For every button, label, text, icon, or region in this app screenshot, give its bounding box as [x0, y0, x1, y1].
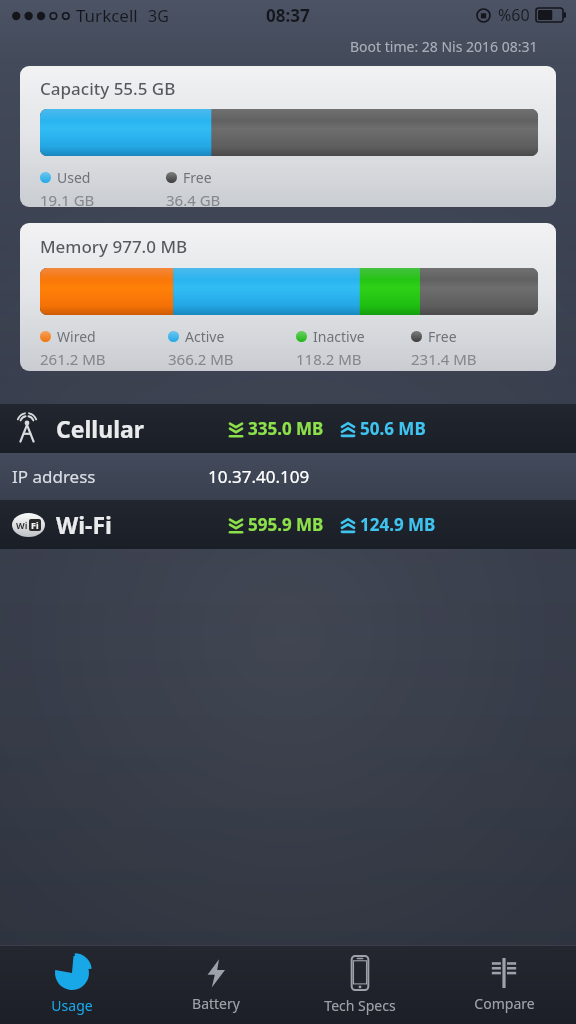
staticText: Free	[183, 168, 212, 187]
staticText: 118.2 MB	[296, 349, 362, 369]
button[interactable]: Wi-Fi	[0, 500, 576, 549]
staticText: 595.9 MB	[248, 513, 324, 536]
staticText: 10.37.40.109	[208, 465, 310, 488]
staticText: Capacity 55.5 GB	[40, 77, 176, 100]
other: Cellular	[12, 414, 42, 444]
button[interactable]: Usage	[0, 946, 144, 1024]
staticText: Turkcell	[76, 4, 138, 27]
staticText: 08:37	[266, 4, 310, 27]
staticText: Boot time: 28 Nis 2016 08:31	[350, 37, 538, 56]
button[interactable]: IP address	[0, 453, 576, 500]
staticText: Active	[185, 327, 225, 346]
staticText: Cellular	[56, 413, 145, 444]
staticText: Fi	[31, 519, 39, 531]
other: Battery	[201, 958, 231, 988]
staticText: Wi	[16, 519, 28, 531]
staticText: 50.6 MB	[360, 417, 426, 440]
staticText: Tech Specs	[324, 996, 396, 1015]
staticText: Usage	[51, 996, 93, 1015]
staticText: Battery	[192, 994, 240, 1013]
staticText: 36.4 GB	[166, 190, 221, 207]
other: Wi-Fi	[12, 513, 45, 537]
staticText: Free	[428, 327, 457, 346]
staticText: Used	[57, 168, 91, 187]
staticText: Wired	[57, 327, 96, 346]
other: Usage	[55, 956, 89, 990]
staticText: 231.4 MB	[411, 349, 477, 369]
staticText: 335.0 MB	[248, 417, 324, 440]
other: Compare	[488, 958, 520, 988]
staticText: Compare	[474, 994, 535, 1013]
staticText: %60	[498, 4, 530, 26]
staticText: 261.2 MB	[40, 349, 106, 369]
staticText: 3G	[148, 5, 169, 27]
staticText: Wi-Fi	[56, 509, 112, 540]
button[interactable]: Battery	[144, 946, 288, 1024]
other: Tech Specs	[347, 956, 373, 990]
button[interactable]: Tech Specs	[288, 946, 432, 1024]
button[interactable]: Compare	[432, 946, 576, 1024]
staticText: Memory 977.0 MB	[40, 235, 188, 258]
staticText: 19.1 GB	[40, 190, 95, 207]
button[interactable]: Cellular	[0, 404, 576, 453]
staticText: IP address	[12, 465, 96, 488]
staticText: 124.9 MB	[360, 513, 436, 536]
staticText: Inactive	[313, 327, 365, 346]
staticText: 366.2 MB	[168, 349, 234, 369]
